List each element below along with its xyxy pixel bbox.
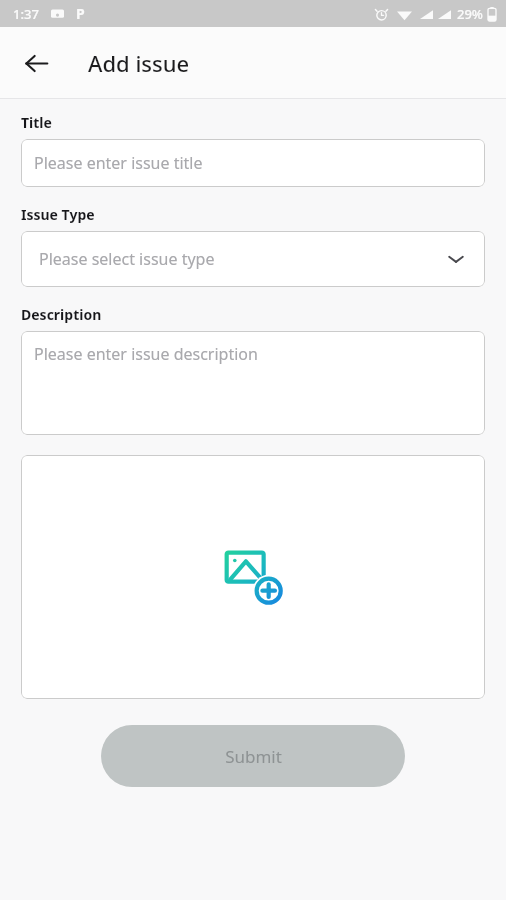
- staticText: Please enter issue description: [34, 343, 258, 365]
- button[interactable]: Please select issue type: [21, 231, 485, 287]
- staticText: Add issue: [88, 48, 190, 78]
- staticText: Description: [21, 305, 102, 324]
- button[interactable]: Submit: [101, 725, 405, 787]
- staticText: 29%: [457, 5, 483, 23]
- staticText: Title: [21, 113, 52, 132]
- button[interactable]: Back: [14, 41, 58, 85]
- staticText: Submit: [225, 745, 282, 768]
- staticText: Please select issue type: [39, 248, 215, 270]
- button[interactable]: Please enter issue title: [21, 139, 485, 187]
- staticText: Issue Type: [21, 205, 95, 224]
- staticText: Please enter issue title: [34, 152, 203, 174]
- button[interactable]: Please enter issue description: [21, 331, 485, 435]
- button[interactable]: Add photo: [21, 455, 485, 699]
- staticText: 1:37: [13, 5, 39, 23]
- staticText: P: [76, 4, 85, 23]
